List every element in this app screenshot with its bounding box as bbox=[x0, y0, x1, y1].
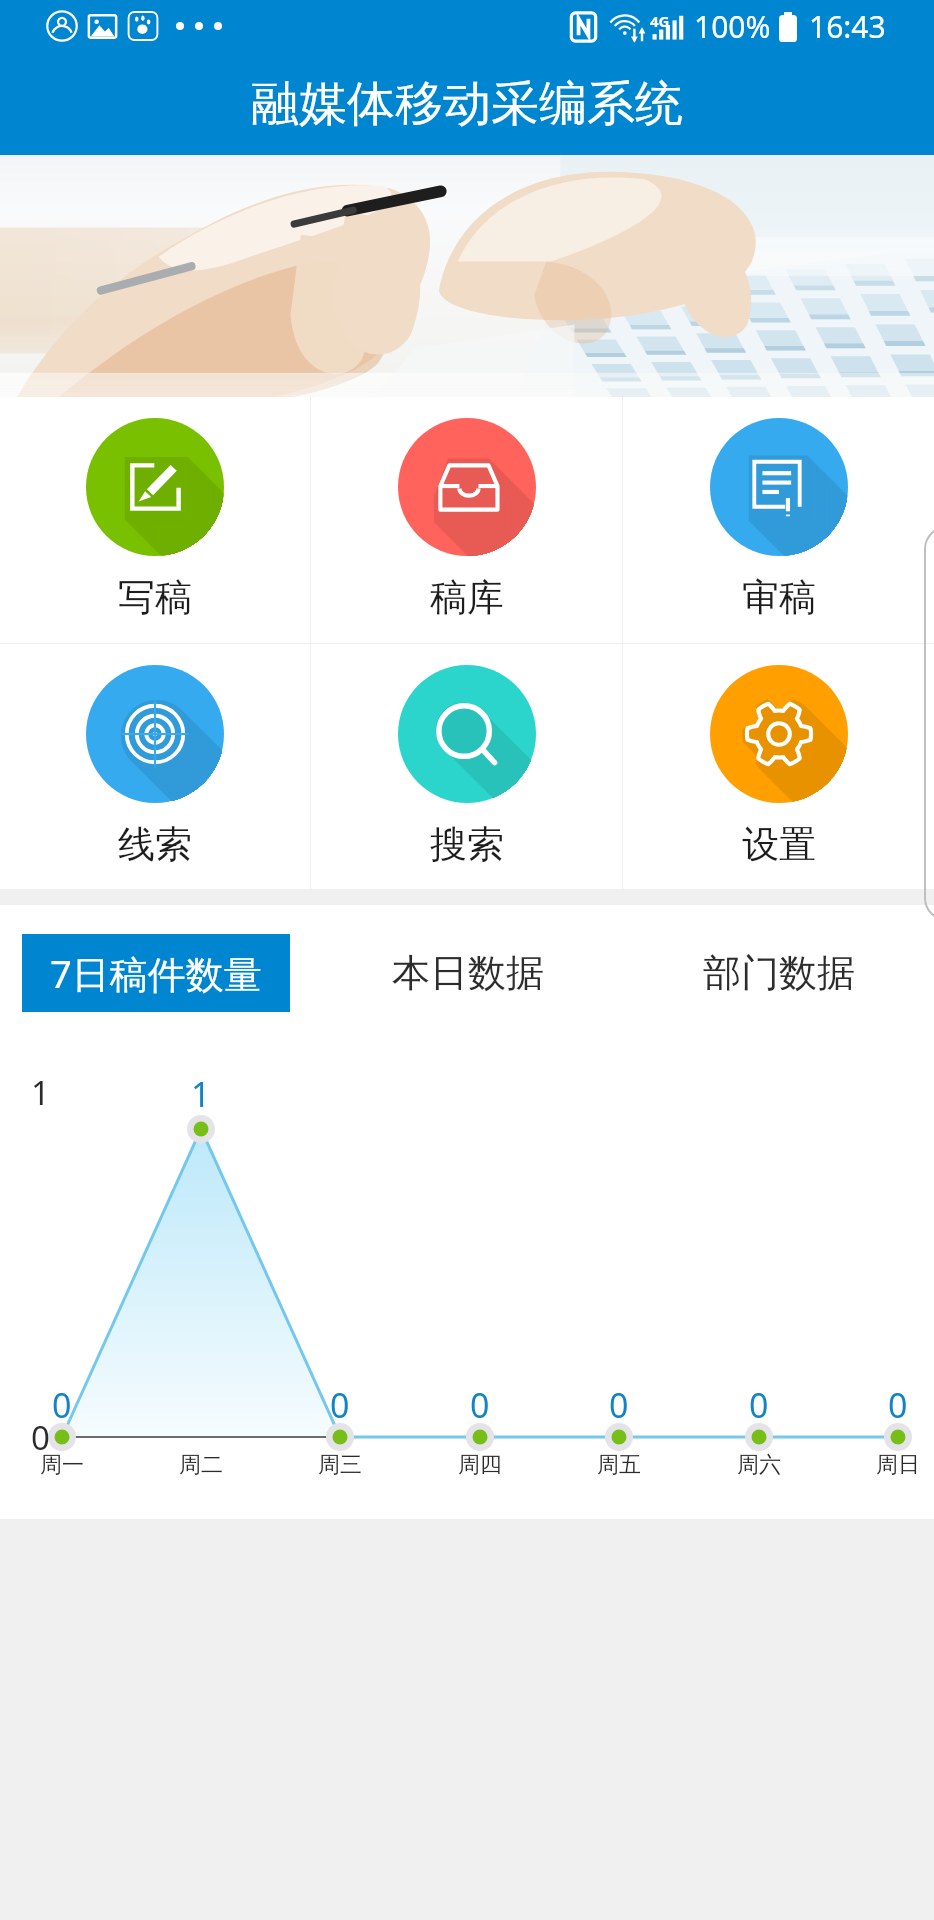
staticText: 周三 bbox=[318, 1451, 362, 1479]
staticText: 周日 bbox=[876, 1451, 920, 1479]
staticText: 100% bbox=[694, 6, 771, 47]
staticText: 0 bbox=[609, 1382, 629, 1428]
button[interactable]: 稿库 bbox=[311, 397, 622, 643]
staticText: 融媒体移动采编系统 bbox=[251, 74, 683, 134]
staticText: 16:43 bbox=[809, 6, 886, 47]
staticText: 周一 bbox=[40, 1451, 84, 1479]
staticText: 审稿 bbox=[742, 574, 816, 621]
staticText: 0 bbox=[888, 1382, 908, 1428]
staticText: 0 bbox=[31, 1415, 50, 1460]
button[interactable]: 搜索 bbox=[311, 644, 622, 889]
staticText: 线索 bbox=[118, 821, 192, 868]
button[interactable]: 审稿 bbox=[623, 397, 934, 643]
staticText: 7日稿件数量 bbox=[50, 947, 262, 999]
staticText: 周五 bbox=[597, 1451, 641, 1479]
button[interactable]: 本日数据 bbox=[312, 934, 623, 1012]
button[interactable]: 线索 bbox=[0, 644, 310, 889]
staticText: 0 bbox=[330, 1382, 350, 1428]
staticText: 本日数据 bbox=[392, 949, 544, 997]
staticText: 1 bbox=[191, 1071, 211, 1117]
button[interactable]: 设置 bbox=[623, 644, 934, 889]
button[interactable]: 7日稿件数量 bbox=[22, 934, 290, 1012]
staticText: 4G bbox=[650, 11, 670, 31]
staticText: 0 bbox=[470, 1382, 490, 1428]
staticText: 稿库 bbox=[430, 574, 504, 621]
staticText: 0 bbox=[52, 1382, 72, 1428]
staticText: 周二 bbox=[179, 1451, 223, 1479]
staticText: 1 bbox=[31, 1070, 50, 1115]
staticText: 周六 bbox=[737, 1451, 781, 1479]
staticText: 周四 bbox=[458, 1451, 502, 1479]
staticText: 0 bbox=[749, 1382, 769, 1428]
button[interactable]: 写稿 bbox=[0, 397, 310, 643]
staticText: 设置 bbox=[742, 821, 816, 868]
staticText: 写稿 bbox=[118, 574, 192, 621]
staticText: 搜索 bbox=[430, 821, 504, 868]
staticText: 部门数据 bbox=[703, 949, 855, 997]
button[interactable]: 部门数据 bbox=[623, 934, 934, 1012]
